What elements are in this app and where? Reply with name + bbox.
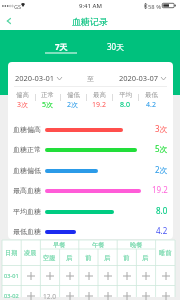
button[interactable]: 2020-03-01 bbox=[15, 73, 62, 83]
staticText: 3次 bbox=[17, 100, 29, 110]
staticText: 血糖记录 bbox=[72, 16, 108, 27]
button[interactable] bbox=[98, 286, 117, 300]
staticText: 12.0 bbox=[43, 292, 57, 300]
staticText: 最高 bbox=[93, 91, 106, 99]
button[interactable] bbox=[79, 286, 98, 300]
staticText: 8.0 bbox=[120, 100, 130, 110]
staticText: 2020-03-07 bbox=[119, 73, 159, 83]
staticText: 9:41 AM bbox=[79, 2, 102, 10]
staticText: 19.2 bbox=[152, 184, 168, 195]
staticText: 5次 bbox=[42, 100, 54, 110]
staticText: 5次 bbox=[155, 143, 168, 154]
staticText: 平均血糖 bbox=[13, 207, 41, 216]
staticText: 58 % bbox=[148, 3, 161, 11]
staticText: 午餐 bbox=[92, 241, 105, 249]
staticText: 平均 bbox=[119, 91, 132, 99]
staticText: 前 bbox=[123, 254, 130, 262]
staticText: 最低 bbox=[145, 91, 158, 99]
staticText: 8.0 bbox=[156, 205, 168, 216]
staticText: 正常 bbox=[41, 91, 54, 99]
button[interactable]: 12.0 bbox=[40, 286, 59, 300]
staticText: 03-02 bbox=[4, 292, 19, 300]
staticText: 30天 bbox=[107, 41, 125, 52]
button[interactable] bbox=[60, 266, 79, 286]
staticText: 后 bbox=[66, 254, 73, 262]
staticText: 前 bbox=[85, 254, 92, 262]
button[interactable] bbox=[117, 266, 136, 286]
staticText: 睡前 bbox=[159, 249, 172, 257]
button[interactable]: 30天 bbox=[96, 38, 136, 54]
staticText: GS bbox=[14, 3, 22, 11]
staticText: 日期 bbox=[5, 249, 18, 257]
button[interactable] bbox=[117, 286, 136, 300]
button[interactable]: 7天 bbox=[41, 38, 81, 54]
button[interactable] bbox=[60, 286, 79, 300]
staticText: 4.2 bbox=[146, 100, 156, 110]
staticText: 后 bbox=[104, 254, 111, 262]
button[interactable] bbox=[156, 286, 175, 300]
staticText: 03-01 bbox=[4, 272, 19, 280]
button[interactable]: Back bbox=[0, 12, 18, 30]
staticText: 3次 bbox=[155, 123, 168, 134]
staticText: 晚餐 bbox=[130, 241, 143, 249]
staticText: 最低血糖 bbox=[13, 227, 41, 236]
staticText: 4.2 bbox=[156, 225, 168, 236]
staticText: 19.2 bbox=[92, 100, 106, 110]
staticText: 偏高 bbox=[16, 91, 29, 99]
button[interactable] bbox=[98, 266, 117, 286]
staticText: 空腹 bbox=[43, 254, 56, 262]
button[interactable] bbox=[79, 266, 98, 286]
staticText: 凌晨 bbox=[24, 249, 37, 257]
staticText: 2次 bbox=[67, 100, 79, 110]
button[interactable] bbox=[21, 286, 40, 300]
button[interactable] bbox=[136, 286, 155, 300]
button[interactable] bbox=[40, 266, 59, 286]
staticText: 2020-03-01 bbox=[15, 73, 55, 83]
staticText: 早餐 bbox=[53, 241, 66, 249]
staticText: 后 bbox=[142, 254, 149, 262]
button[interactable] bbox=[156, 266, 175, 286]
staticText: 最高血糖 bbox=[13, 186, 41, 195]
staticText: 偏低 bbox=[67, 91, 80, 99]
button[interactable] bbox=[21, 266, 40, 286]
button[interactable] bbox=[136, 266, 155, 286]
staticText: 7天 bbox=[55, 41, 68, 52]
staticText: 血糖偏低 bbox=[13, 166, 41, 175]
staticText: 至 bbox=[87, 74, 94, 83]
staticText: 血糖正常 bbox=[13, 145, 41, 154]
staticText: 2次 bbox=[155, 164, 168, 175]
button[interactable]: 2020-03-07 bbox=[119, 73, 166, 83]
staticText: 血糖偏高 bbox=[13, 125, 41, 134]
